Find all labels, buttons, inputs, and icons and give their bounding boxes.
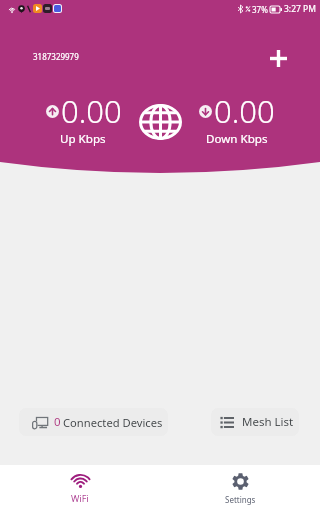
button[interactable]: Mesh List bbox=[211, 408, 299, 436]
staticText: Connected Devices bbox=[63, 415, 163, 430]
staticText: Settings bbox=[225, 494, 256, 505]
button[interactable]: Add bbox=[266, 46, 291, 71]
staticText: 37% bbox=[252, 4, 268, 15]
staticText: Down Kbps bbox=[206, 131, 268, 147]
button[interactable]: 0 bbox=[19, 408, 168, 436]
staticText: 0 bbox=[54, 414, 61, 430]
staticText: 3187329979 bbox=[33, 51, 79, 62]
staticText: 3:27 PM bbox=[284, 3, 316, 15]
staticText: WiFi bbox=[71, 492, 89, 504]
button[interactable]: WiFi bbox=[0, 465, 160, 512]
staticText: Mesh List bbox=[242, 414, 294, 430]
staticText: 0.00 bbox=[214, 90, 275, 132]
staticText: Up Kbps bbox=[60, 131, 106, 147]
staticText: 0.00 bbox=[61, 90, 122, 132]
button[interactable]: Settings bbox=[160, 465, 320, 512]
